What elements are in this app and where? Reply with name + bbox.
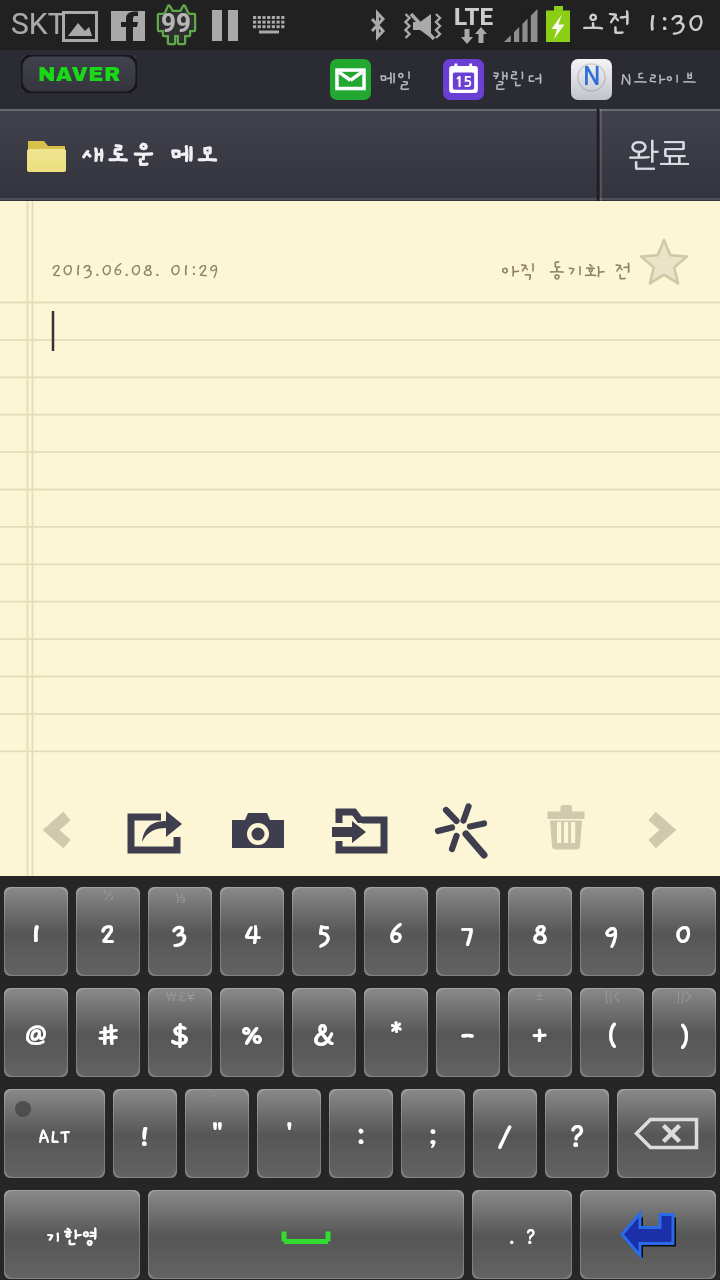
staticText: 2: [99, 918, 117, 952]
button[interactable]: %: [220, 988, 284, 1077]
staticText: 7: [460, 918, 477, 952]
staticText: ½: [102, 889, 115, 902]
staticText: 오전 1:30: [580, 8, 706, 40]
staticText: 아직 동기화 전: [500, 261, 633, 284]
button[interactable]: NAVER: [21, 55, 137, 93]
staticText: :: [355, 1120, 367, 1154]
button[interactable]: ´`: [185, 1089, 249, 1178]
staticText: 완료: [628, 139, 691, 172]
staticText: 2013.06.08. 01:29: [51, 260, 220, 281]
button[interactable]: 15: [443, 59, 544, 100]
button[interactable]: *: [364, 988, 428, 1077]
button[interactable]: 메일: [330, 59, 414, 100]
staticText: ': [284, 1120, 295, 1154]
staticText: 메일: [379, 69, 414, 90]
button[interactable]: 새로운 메모: [0, 109, 598, 201]
button[interactable]: 9: [580, 887, 644, 976]
button[interactable]: 7: [436, 887, 500, 976]
staticText: 3: [171, 918, 190, 952]
button[interactable]: 4: [220, 887, 284, 976]
staticText: -: [457, 1019, 479, 1053]
staticText: (: [605, 1019, 620, 1053]
button[interactable]: &: [292, 988, 356, 1077]
staticText: ?: [568, 1120, 587, 1154]
staticText: 새로운 메모: [80, 140, 221, 171]
staticText: %: [239, 1019, 265, 1053]
button[interactable]: 1: [4, 887, 68, 976]
button[interactable]: ½: [76, 887, 140, 976]
staticText: !: [137, 1120, 153, 1154]
button[interactable]: -: [436, 988, 500, 1077]
button[interactable]: ₩£¥: [148, 988, 212, 1077]
staticText: ₩£¥: [165, 990, 195, 1003]
staticText: 0: [674, 918, 694, 952]
button[interactable]: 0: [652, 887, 716, 976]
staticText: [{<: [604, 990, 620, 1003]
staticText: 1: [29, 918, 44, 952]
staticText: ALT: [38, 1126, 71, 1148]
staticText: #: [96, 1019, 121, 1053]
staticText: *: [387, 1019, 406, 1053]
button[interactable]: #: [76, 988, 140, 1077]
staticText: 기한영: [45, 1227, 100, 1249]
staticText: ±: [536, 990, 544, 1003]
button[interactable]: 6: [364, 887, 428, 976]
staticText: ]}>: [676, 990, 692, 1003]
button[interactable]: 8: [508, 887, 572, 976]
button[interactable]: [148, 1190, 464, 1279]
button[interactable]: ;: [401, 1089, 465, 1178]
staticText: 99: [161, 8, 191, 38]
button[interactable]: N: [571, 59, 698, 100]
staticText: @: [23, 1019, 50, 1053]
button[interactable]: !: [113, 1089, 177, 1178]
button[interactable]: ?: [545, 1089, 609, 1178]
button[interactable]: [580, 1190, 716, 1279]
button[interactable]: ': [257, 1089, 321, 1178]
button[interactable]: :: [329, 1089, 393, 1178]
staticText: N드라이브: [620, 70, 698, 90]
staticText: ): [677, 1019, 692, 1053]
staticText: $: [169, 1019, 192, 1053]
staticText: . ?: [508, 1227, 537, 1249]
staticText: 8: [531, 918, 550, 952]
staticText: ⅓: [175, 889, 186, 907]
staticText: 9: [603, 918, 621, 952]
staticText: /: [497, 1120, 513, 1154]
button[interactable]: 완료: [598, 109, 720, 201]
staticText: N: [583, 65, 601, 89]
button[interactable]: ⅓: [148, 887, 212, 976]
staticText: LTE: [454, 3, 493, 31]
button[interactable]: . ?: [472, 1190, 572, 1279]
staticText: 6: [388, 918, 405, 952]
staticText: ´`: [212, 1091, 223, 1109]
staticText: 캘린더: [492, 69, 544, 90]
button[interactable]: ]}>: [652, 988, 716, 1077]
button[interactable]: ALT: [4, 1089, 105, 1178]
staticText: +: [529, 1019, 551, 1053]
button[interactable]: 5: [292, 887, 356, 976]
staticText: ;: [427, 1120, 439, 1154]
staticText: 5: [316, 918, 333, 952]
button[interactable]: @: [4, 988, 68, 1077]
button[interactable]: 기한영: [4, 1190, 140, 1279]
button[interactable]: ±: [508, 988, 572, 1077]
button[interactable]: [{<: [580, 988, 644, 1077]
staticText: 15: [455, 75, 472, 89]
staticText: NAVER: [38, 63, 121, 86]
staticText: SKT: [11, 6, 66, 41]
button[interactable]: /: [473, 1089, 537, 1178]
button[interactable]: [617, 1089, 716, 1178]
staticText: &: [311, 1019, 337, 1053]
staticText: 4: [243, 918, 262, 952]
staticText: ": [210, 1120, 225, 1154]
